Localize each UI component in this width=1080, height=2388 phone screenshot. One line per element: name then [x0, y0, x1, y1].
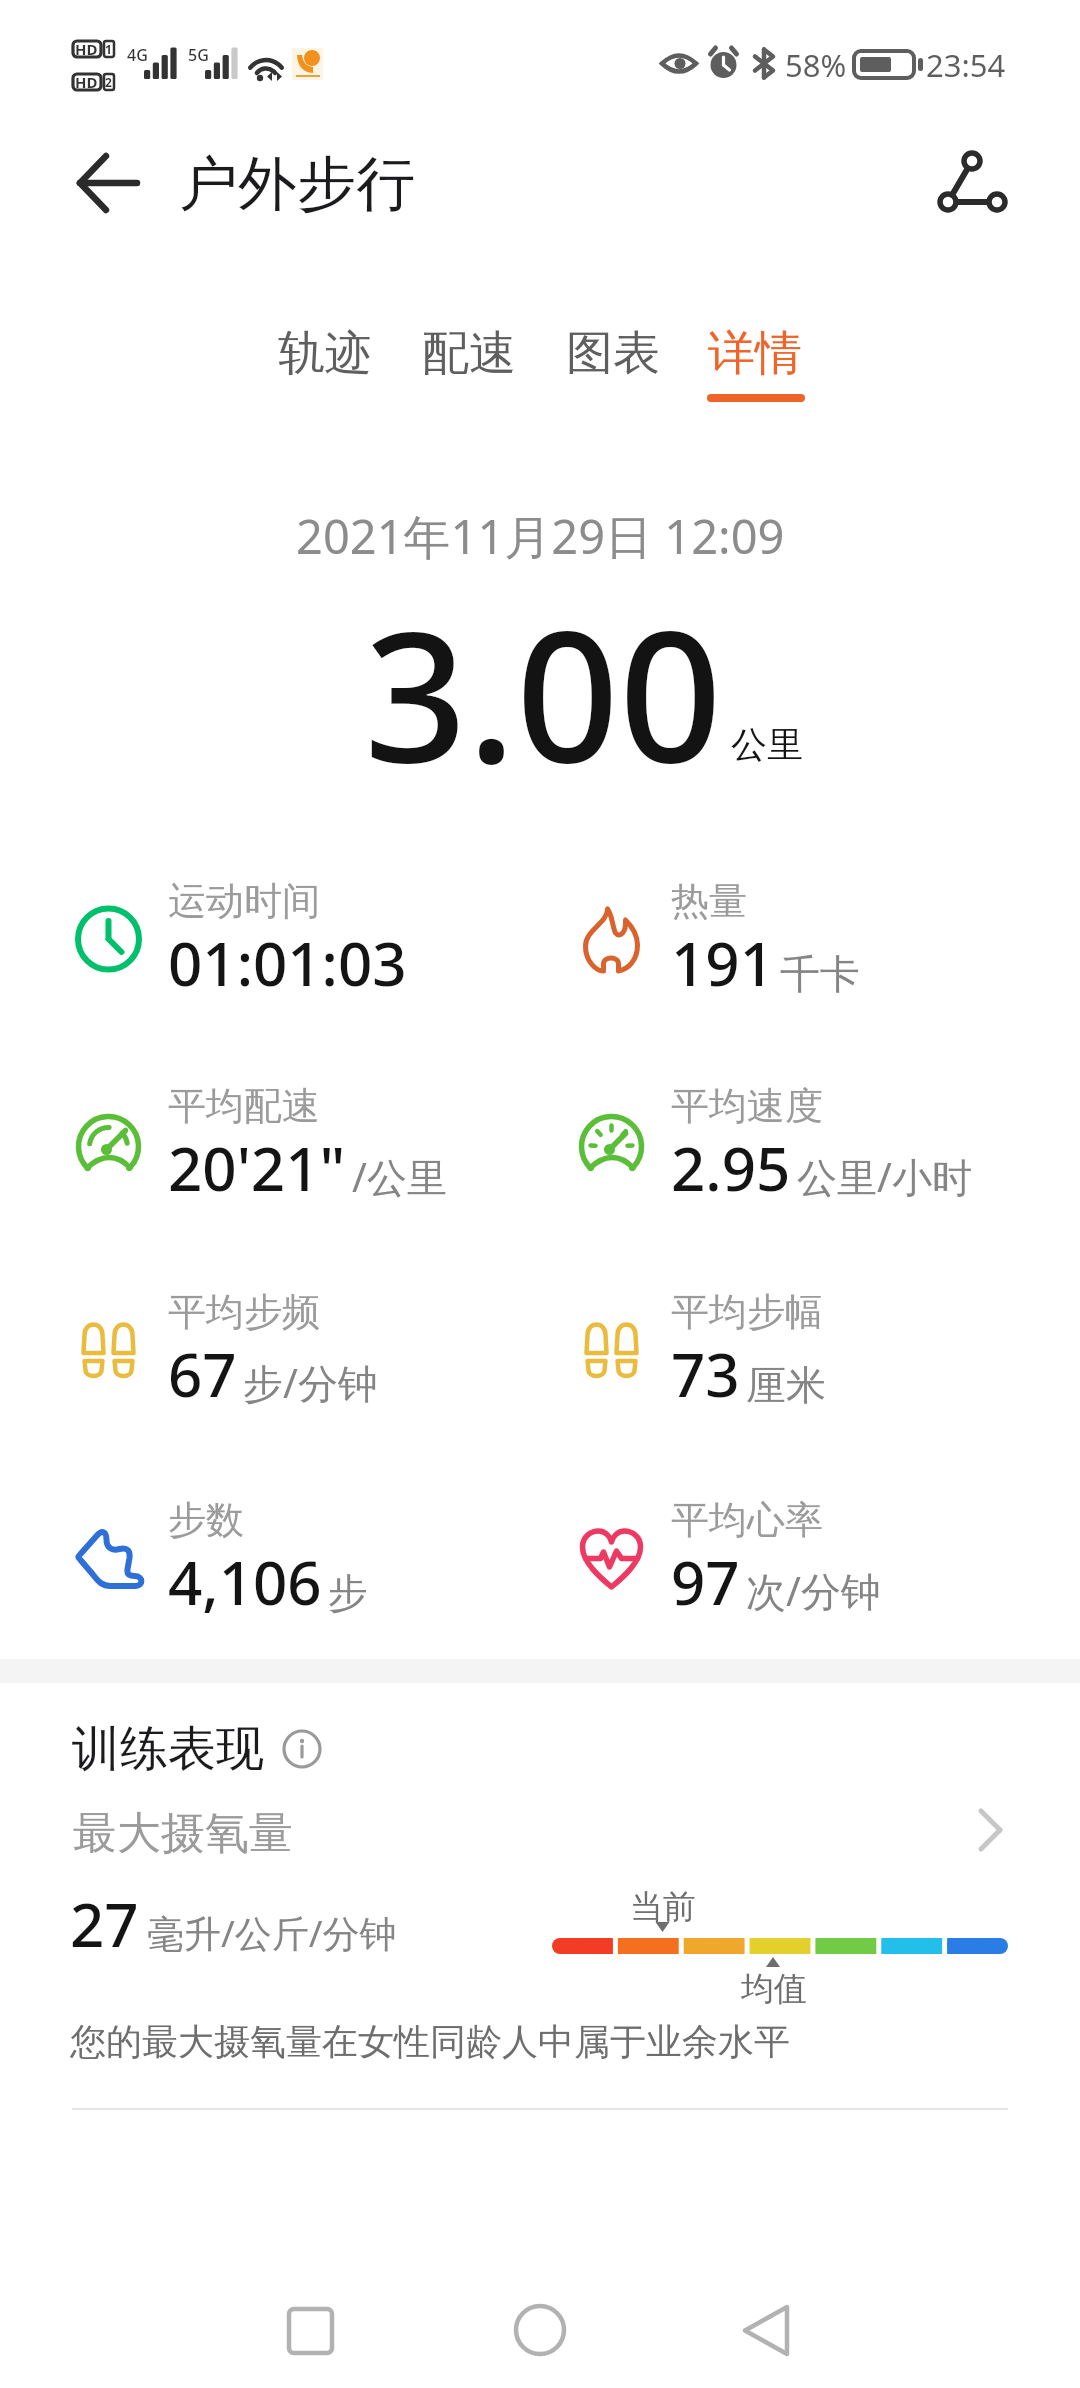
staticText: 191 — [671, 922, 774, 1004]
button[interactable]: 平均心率 — [573, 1496, 1013, 1646]
staticText: 公里/小时 — [797, 1149, 972, 1204]
staticText: 千卡 — [780, 949, 860, 999]
button[interactable]: Back — [725, 2288, 807, 2370]
staticText: 3.00 — [364, 570, 722, 815]
staticText: 户外步行 — [179, 147, 415, 221]
staticText: 步/分钟 — [243, 1355, 378, 1410]
staticText: 97 — [671, 1541, 740, 1623]
staticText: 23:54 — [926, 44, 1006, 86]
staticText: 毫升/公斤/分钟 — [147, 1907, 397, 1958]
staticText: 平均配速 — [168, 1082, 320, 1130]
staticText: 厘米 — [746, 1360, 826, 1410]
staticText: 20'21" — [168, 1127, 346, 1209]
staticText: 均值 — [741, 1968, 807, 2010]
staticText: 平均步幅 — [671, 1288, 823, 1336]
button[interactable]: 最大摄氧量 — [0, 1800, 1080, 1896]
button[interactable]: 平均步幅 — [573, 1288, 1013, 1438]
staticText: 2.95 — [671, 1127, 791, 1209]
staticText: 27 — [70, 1883, 139, 1965]
button[interactable]: 详情 — [684, 306, 828, 422]
staticText: 详情 — [708, 324, 802, 383]
staticText: 图表 — [566, 324, 660, 383]
button[interactable]: 步数 — [70, 1496, 510, 1646]
button[interactable]: Recent apps — [269, 2288, 351, 2370]
staticText: 2 — [105, 74, 112, 90]
staticText: 平均心率 — [671, 1496, 823, 1544]
button[interactable]: 图表 — [542, 306, 686, 422]
staticText: 当前 — [630, 1886, 696, 1928]
staticText: 您的最大摄氧量在女性同龄人中属于业余水平 — [70, 2019, 790, 2064]
staticText: 4,106 — [168, 1541, 322, 1623]
staticText: 热量 — [671, 877, 747, 925]
button[interactable]: 平均速度 — [573, 1082, 1013, 1232]
button[interactable]: 配速 — [398, 306, 542, 422]
button[interactable]: 平均步频 — [70, 1288, 510, 1438]
button[interactable]: 热量 — [573, 877, 1013, 1027]
staticText: 73 — [671, 1333, 740, 1415]
button[interactable]: 平均配速 — [70, 1082, 510, 1232]
staticText: 配速 — [422, 324, 516, 383]
staticText: 次/分钟 — [746, 1563, 881, 1618]
staticText: 步数 — [168, 1496, 244, 1544]
button[interactable]: Back — [36, 130, 148, 234]
staticText: 2021年11月29日 12:09 — [296, 504, 785, 568]
button[interactable]: Home — [500, 2288, 582, 2370]
staticText: 训练表现 — [72, 1719, 264, 1779]
staticText: 01:01:03 — [168, 922, 407, 1004]
staticText: HD — [75, 39, 98, 59]
staticText: 58% — [785, 44, 847, 86]
staticText: 公里 — [731, 722, 803, 767]
button[interactable]: Share — [912, 130, 1024, 234]
button[interactable]: 运动时间 — [70, 877, 510, 1027]
button[interactable]: Info — [282, 1727, 326, 1771]
staticText: 运动时间 — [168, 877, 320, 925]
staticText: 轨迹 — [278, 324, 372, 383]
staticText: 5G — [188, 44, 209, 66]
button[interactable]: 轨迹 — [254, 306, 398, 422]
staticText: HD — [75, 72, 98, 92]
staticText: 4G — [127, 44, 148, 66]
staticText: /公里 — [352, 1149, 447, 1204]
staticText: 步 — [328, 1568, 368, 1618]
staticText: 67 — [168, 1333, 237, 1415]
staticText: 最大摄氧量 — [73, 1806, 293, 1861]
staticText: 1 — [105, 41, 112, 57]
staticText: 平均速度 — [671, 1082, 823, 1130]
staticText: 平均步频 — [168, 1288, 320, 1336]
